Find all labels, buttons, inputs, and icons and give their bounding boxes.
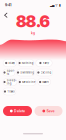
button[interactable]: Cycling	[36, 69, 53, 76]
staticText: Swimming	[20, 71, 34, 74]
button[interactable]: Swimming	[17, 69, 35, 76]
staticText: ▂▄ ᯤ ▮	[50, 3, 61, 7]
button[interactable]: Sleeping	[3, 78, 17, 85]
button[interactable]: Delete	[3, 106, 32, 116]
button[interactable]: Sports	[3, 69, 15, 76]
button[interactable]: Nothing	[18, 59, 34, 66]
staticText: Sports	[7, 69, 15, 76]
staticText: Delete	[14, 109, 25, 113]
staticText: Nothing	[22, 61, 34, 65]
staticText: Cycling	[41, 71, 52, 74]
staticText: 88.6	[16, 12, 50, 31]
button[interactable]: Dizzy	[3, 59, 16, 66]
staticText: Travel	[7, 90, 15, 93]
staticText: kg	[31, 31, 35, 35]
button[interactable]: Medicine	[19, 78, 36, 85]
button[interactable]: Back	[2, 10, 10, 20]
staticText: Medicine	[22, 80, 36, 84]
staticText: 9:41	[5, 3, 11, 7]
staticText: Sleeping	[7, 79, 17, 85]
staticText: Save	[47, 109, 55, 113]
staticText: Dizzy	[8, 61, 14, 65]
button[interactable]: Travel	[3, 88, 16, 95]
button[interactable]: Party	[36, 59, 52, 66]
staticText: Water	[42, 80, 49, 84]
staticText: Party	[43, 61, 49, 65]
button[interactable]: Water	[38, 78, 51, 85]
button[interactable]: Save	[34, 106, 62, 116]
